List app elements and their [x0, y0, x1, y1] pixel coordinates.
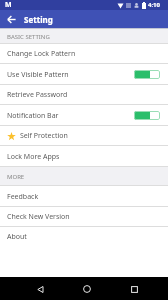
button[interactable]: About [0, 227, 168, 247]
staticText: Lock More Apps [7, 152, 60, 162]
staticText: BASIC SETTING [7, 33, 50, 41]
staticText: MORE [7, 173, 25, 181]
button[interactable]: Lock More Apps [0, 146, 168, 167]
button[interactable] [30, 279, 50, 299]
staticText: About [7, 232, 27, 242]
staticText: Feedback [7, 192, 39, 202]
button[interactable] [77, 279, 97, 299]
button[interactable] [2, 10, 20, 28]
staticText: Retrieve Password [7, 90, 68, 100]
staticText: Check New Version [7, 212, 70, 222]
button[interactable]: Use Visible Pattern [0, 64, 168, 85]
button[interactable]: Check New Version [0, 207, 168, 227]
staticText: Use Visible Pattern [7, 70, 69, 80]
staticText: Setting [24, 14, 53, 25]
button[interactable]: Self Protection [0, 126, 168, 146]
staticText: Notification Bar [7, 111, 59, 121]
button[interactable]: Feedback [0, 186, 168, 207]
staticText: M [5, 0, 12, 10]
staticText: 4:10 [148, 1, 160, 9]
button[interactable]: Retrieve Password [0, 85, 168, 105]
button[interactable] [124, 279, 144, 299]
staticText: Change Lock Pattern [7, 49, 76, 59]
button[interactable]: Notification Bar [0, 105, 168, 126]
button[interactable]: Change Lock Pattern [0, 44, 168, 64]
staticText: Self Protection [20, 131, 68, 141]
